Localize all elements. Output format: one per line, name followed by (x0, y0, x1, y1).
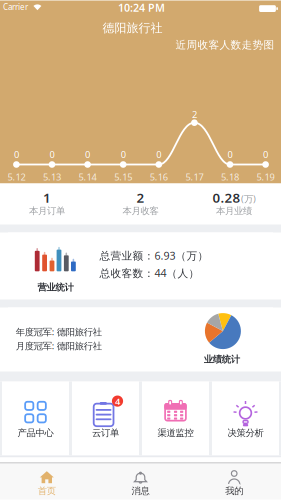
staticText: 0 (156, 148, 161, 161)
button[interactable]: 年度冠军: 德阳旅行社 (8, 307, 273, 371)
staticText: 5.14 (79, 171, 97, 183)
staticText: 年度冠军: 德阳旅行社 (16, 325, 102, 338)
staticText: 1 (43, 189, 51, 206)
staticText: 我的 (225, 485, 243, 497)
staticText: 5.13 (43, 171, 61, 183)
staticText: 0 (85, 148, 90, 161)
staticText: 2 (136, 189, 144, 206)
staticText: 0.28 (212, 189, 240, 206)
staticText: 本月订单 (29, 205, 65, 217)
button[interactable]: 4 (72, 381, 139, 455)
button[interactable]: 决策分析 (212, 381, 279, 455)
button[interactable]: 渠道监控 (142, 381, 209, 455)
staticText: 业绩统计 (204, 354, 240, 365)
staticText: 营业统计 (37, 282, 73, 293)
staticText: 产品中心 (17, 427, 53, 439)
staticText: 本月业绩 (216, 205, 252, 217)
staticText: 0 (49, 148, 54, 161)
staticText: 总收客数：44（人） (100, 266, 200, 280)
staticText: 月度冠军: 德阳旅行社 (16, 339, 102, 352)
button[interactable]: 产品中心 (2, 381, 69, 455)
staticText: 决策分析 (227, 427, 263, 439)
staticText: 4 (115, 395, 120, 407)
staticText: 0 (121, 148, 126, 161)
staticText: 渠道监控 (157, 427, 193, 439)
staticText: Carrier (3, 2, 28, 12)
staticText: 5.19 (257, 171, 275, 183)
staticText: 本月收客 (122, 205, 158, 217)
staticText: 总营业额：6.93（万） (100, 248, 209, 263)
staticText: 德阳旅行社 (102, 21, 162, 35)
button[interactable]: 营业统计 (8, 232, 273, 299)
staticText: 5.18 (221, 171, 239, 183)
staticText: 5.15 (114, 171, 132, 183)
staticText: 云订单 (92, 427, 119, 439)
staticText: 0 (263, 148, 268, 161)
button[interactable]: 首页 (0, 463, 94, 499)
staticText: 2 (192, 108, 197, 121)
staticText: 5.16 (150, 171, 168, 183)
staticText: 首页 (38, 485, 56, 497)
staticText: 5.17 (185, 171, 203, 183)
staticText: 10:24 PM (118, 0, 165, 15)
staticText: 5.12 (7, 171, 25, 183)
button[interactable]: 我的 (187, 463, 281, 499)
staticText: 0 (227, 148, 232, 161)
staticText: 消息 (131, 485, 149, 497)
staticText: 近周收客人数走势图 (175, 38, 274, 51)
button[interactable]: 消息 (94, 463, 187, 499)
staticText: (万) (241, 192, 256, 205)
staticText: 0 (14, 148, 19, 161)
